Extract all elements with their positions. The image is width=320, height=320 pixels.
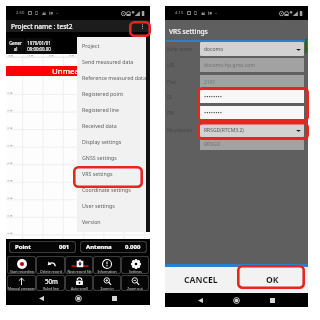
button[interactable]: User settings [77, 197, 146, 213]
staticText: VRS settings [82, 170, 113, 177]
button[interactable]: Point [15, 242, 70, 252]
button[interactable]: Reference measured data [77, 69, 146, 85]
button[interactable]: Delete record [37, 257, 64, 273]
staticText: •••••••• [204, 109, 223, 117]
button[interactable]: 50m [37, 276, 64, 290]
staticText: Received data [82, 122, 117, 129]
staticText: Mountpoint [167, 127, 193, 133]
staticText: User settings [82, 202, 115, 209]
staticText: Ntrip server [167, 46, 193, 52]
button[interactable]: Registered point [77, 85, 146, 101]
staticText: Manual compass [8, 286, 35, 290]
staticText: CANCEL [184, 274, 218, 286]
button[interactable]: Received data [77, 117, 146, 133]
staticText: Ruled line [43, 286, 59, 290]
button[interactable]: VRS settings [77, 165, 146, 181]
staticText: docomo [204, 46, 224, 53]
button[interactable]: Home [72, 292, 85, 305]
staticText: 0.000 [125, 243, 141, 251]
button[interactable]: Home [230, 294, 243, 307]
staticText: docomo-hp-gnss.com [204, 62, 256, 69]
button[interactable]: 1970/01/01 09:00:00.00 [25, 38, 52, 54]
staticText: Reference measured data [82, 74, 146, 81]
button[interactable]: Settings [122, 257, 148, 273]
staticText: OK [266, 274, 279, 286]
staticText: Antenna [86, 243, 112, 251]
button[interactable]: New record file [66, 257, 92, 273]
button[interactable]: Start recording [8, 257, 35, 273]
button[interactable]: Project name : test2 [6, 20, 150, 32]
staticText: URL [167, 62, 176, 68]
button[interactable]: Auto scroll [66, 276, 92, 290]
button[interactable]: Coordinate settings [77, 181, 146, 197]
staticText: Settings [129, 269, 142, 273]
button[interactable]: Version [77, 213, 146, 229]
staticText: Start recording [10, 269, 34, 273]
button[interactable]: More options [137, 21, 148, 32]
button[interactable]: RRSGD(RTCM3.2) [204, 123, 301, 137]
button[interactable]: OK [236, 267, 308, 293]
staticText: Send measured data [82, 58, 134, 65]
staticText: 50m [45, 277, 58, 285]
staticText: Project [82, 42, 100, 49]
staticText: Coordinate settings [82, 186, 131, 193]
staticText: Zoom in [100, 286, 114, 290]
button[interactable]: Zoom in [94, 276, 120, 290]
staticText: Port [167, 79, 176, 85]
staticText: Point [15, 243, 31, 251]
button[interactable]: Recents [266, 294, 279, 307]
button[interactable]: Zoom out [122, 276, 148, 290]
button[interactable]: GNSS settings [77, 149, 146, 165]
staticText: •••••••• [204, 93, 223, 101]
staticText: Unmeasured [52, 66, 100, 76]
button[interactable]: Display settings [77, 133, 146, 149]
staticText: Version [82, 218, 101, 225]
button[interactable]: Manual compass [8, 276, 35, 290]
staticText: Gener al [9, 40, 22, 52]
button[interactable]: CANCEL [165, 267, 236, 293]
staticText: Registered point [82, 90, 124, 97]
staticText: Auto scroll [71, 286, 88, 290]
button[interactable]: docomo [204, 42, 301, 56]
staticText: VRS settings [169, 27, 208, 36]
button[interactable]: Project [77, 37, 146, 53]
staticText: PW [167, 110, 174, 116]
button[interactable]: Back [35, 292, 48, 305]
staticText: 2:50 [16, 10, 25, 16]
button[interactable]: Back [194, 294, 207, 307]
staticText: GNSS settings [82, 154, 117, 161]
staticText: RRSGD [204, 141, 221, 148]
staticText: 1970/01/01 09:00:00.00 [27, 40, 51, 52]
staticText: Information [97, 269, 117, 273]
staticText: 2101 [204, 79, 216, 86]
staticText: New record file [67, 269, 92, 273]
button[interactable]: Registered line [77, 101, 146, 117]
staticText: 4:15 [175, 10, 184, 16]
staticText: ID [167, 94, 172, 100]
staticText: Display settings [82, 138, 122, 145]
button[interactable]: Antenna [86, 242, 141, 252]
staticText: Zoom out [127, 286, 143, 290]
staticText: Delete record [40, 269, 62, 273]
button[interactable]: Gener al [7, 38, 24, 54]
button[interactable]: Send measured data [77, 53, 146, 69]
staticText: 001 [59, 243, 70, 251]
button[interactable]: Information [94, 257, 120, 273]
button[interactable]: Recents [108, 292, 121, 305]
staticText: RRSGD(RTCM3.2) [204, 127, 244, 134]
staticText: Project name : test2 [11, 22, 73, 31]
staticText: Registered line [82, 106, 120, 113]
